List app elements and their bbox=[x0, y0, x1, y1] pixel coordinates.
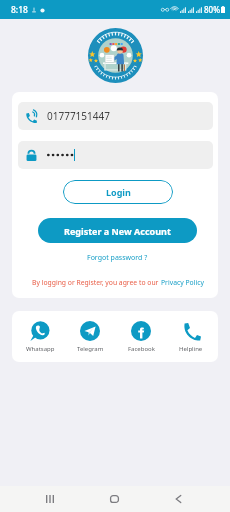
button[interactable]: Forgot password ? bbox=[85, 251, 150, 265]
button[interactable] bbox=[18, 141, 213, 169]
staticText: 8:18 bbox=[11, 4, 28, 16]
staticText: 80% bbox=[204, 4, 220, 15]
button[interactable]: 01777151447 bbox=[18, 102, 213, 130]
staticText: Helpline bbox=[179, 345, 203, 353]
staticText: Forgot password ? bbox=[87, 253, 148, 263]
button[interactable]: Facebook bbox=[121, 321, 161, 353]
button[interactable]: Privacy Policy bbox=[161, 278, 204, 287]
button[interactable]: Login bbox=[63, 180, 173, 204]
button[interactable]: Recent apps bbox=[36, 486, 64, 512]
button[interactable]: Register a New Account bbox=[38, 218, 197, 243]
staticText: Telegram bbox=[77, 345, 104, 353]
button[interactable]: Telegram bbox=[70, 321, 110, 353]
staticText: Facebook bbox=[128, 345, 155, 353]
staticText: By logging or Register, you agree to our bbox=[32, 278, 161, 287]
staticText: 01777151447 bbox=[47, 109, 110, 123]
staticText: Register a New Account bbox=[64, 225, 171, 237]
button[interactable]: Helpline bbox=[171, 321, 211, 353]
button[interactable]: Back bbox=[164, 486, 192, 512]
staticText: Login bbox=[106, 186, 131, 198]
staticText: Whatsapp bbox=[26, 345, 55, 353]
staticText: Privacy Policy bbox=[161, 278, 204, 287]
button[interactable]: Whatsapp bbox=[20, 321, 60, 353]
button[interactable]: Home bbox=[100, 486, 128, 512]
